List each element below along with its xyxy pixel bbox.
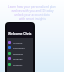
button[interactable]: Settings <box>7 56 33 61</box>
button[interactable]: Payments <box>7 45 33 50</box>
button[interactable]: Account <box>7 40 33 45</box>
button[interactable]: Rewards <box>7 51 33 56</box>
staticText: with smart insights <box>19 17 46 21</box>
staticText: evolves with you and ID today <box>11 9 54 13</box>
staticText: Payments <box>13 46 25 49</box>
staticText: Rewards <box>13 52 24 55</box>
staticText: unlock your account data <box>14 13 50 17</box>
staticText: Welcome Chris <box>8 32 32 36</box>
button[interactable]: Support <box>7 62 33 67</box>
staticText: Learn how your personalized plan <box>8 5 56 9</box>
staticText: Account <box>13 41 23 44</box>
staticText: Support <box>13 63 23 66</box>
staticText: Settings <box>13 57 23 60</box>
